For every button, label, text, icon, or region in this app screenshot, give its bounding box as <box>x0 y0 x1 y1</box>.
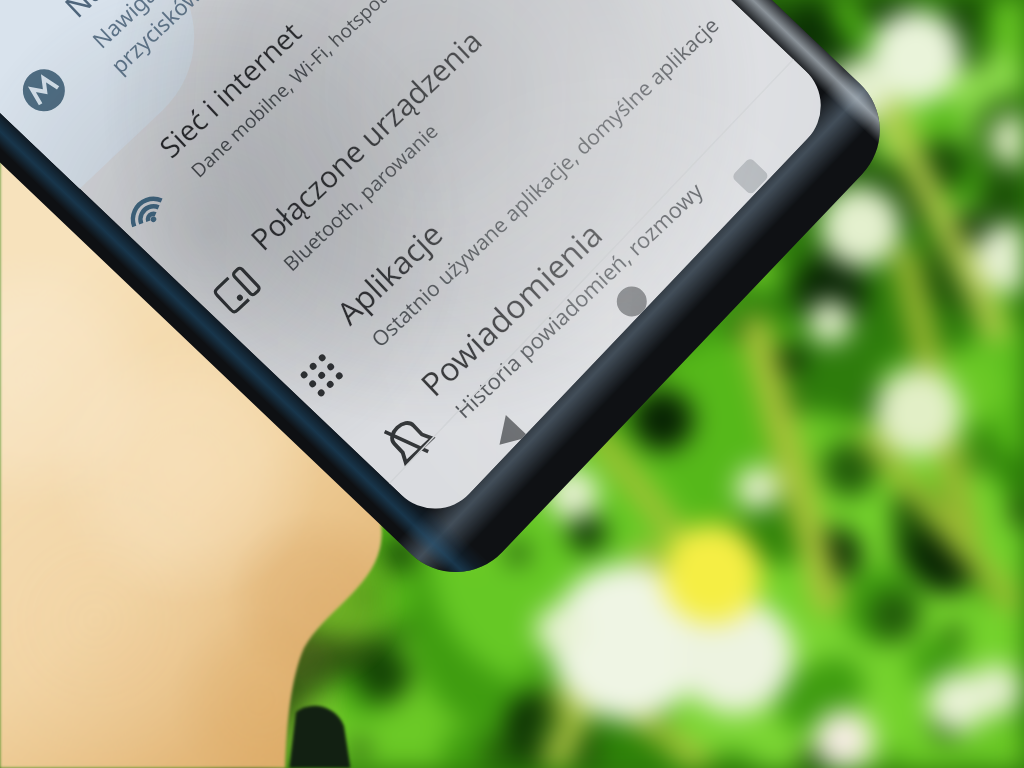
button[interactable] <box>0 0 1024 768</box>
